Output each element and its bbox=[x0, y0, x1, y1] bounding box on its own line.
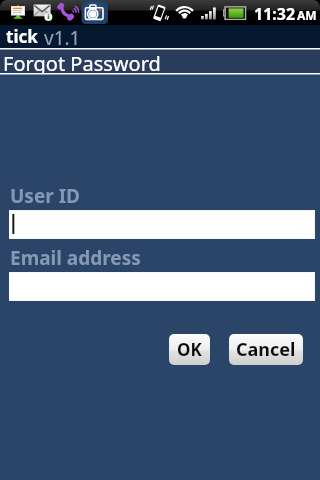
staticText: OK bbox=[177, 338, 202, 361]
staticText: 11:32 bbox=[254, 3, 296, 25]
staticText: tick bbox=[6, 25, 38, 48]
staticText: User ID bbox=[10, 183, 80, 209]
button[interactable] bbox=[9, 210, 315, 239]
staticText: Cancel bbox=[236, 337, 296, 362]
staticText: AM bbox=[297, 7, 317, 23]
staticText: v1.1 bbox=[44, 25, 81, 48]
staticText: Email address bbox=[10, 245, 141, 271]
button[interactable]: Cancel bbox=[229, 334, 303, 365]
staticText: Forgot Password bbox=[3, 50, 161, 73]
button[interactable]: OK bbox=[169, 334, 210, 365]
